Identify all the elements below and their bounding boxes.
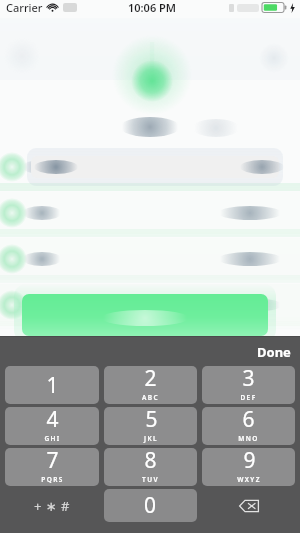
staticText: 6 xyxy=(242,407,255,434)
staticText: TUV xyxy=(142,475,159,484)
staticText: JKL xyxy=(144,434,158,443)
button[interactable]: 1 xyxy=(5,366,99,404)
staticText: 5 xyxy=(145,407,158,434)
staticText: 0 xyxy=(144,491,157,520)
button[interactable]: 9 xyxy=(202,448,295,486)
staticText: + ∗ # xyxy=(34,497,70,515)
button[interactable]: 2 xyxy=(104,366,197,404)
button[interactable]: 6 xyxy=(202,407,295,445)
button[interactable]: 3 xyxy=(202,366,295,404)
staticText: ABC xyxy=(142,393,159,402)
staticText: Done xyxy=(257,343,291,361)
staticText: 9 xyxy=(243,448,256,475)
button[interactable]: 8 xyxy=(104,448,197,486)
button[interactable]: Delete xyxy=(202,489,295,522)
button[interactable]: + ∗ # xyxy=(5,489,99,522)
staticText: 4 xyxy=(46,407,59,434)
staticText: WXYZ xyxy=(237,475,261,484)
button[interactable]: 7 xyxy=(5,448,99,486)
button[interactable]: 0 xyxy=(104,489,197,522)
staticText: MNO xyxy=(238,434,259,443)
staticText: 3 xyxy=(242,366,255,393)
staticText: 2 xyxy=(144,366,157,393)
staticText: PQRS xyxy=(41,475,64,484)
staticText: DEF xyxy=(240,393,257,402)
staticText: 10:06 PM xyxy=(128,0,177,15)
staticText: 1 xyxy=(46,371,59,400)
staticText: 8 xyxy=(144,448,157,475)
staticText: 7 xyxy=(46,448,59,475)
button[interactable]: 4 xyxy=(5,407,99,445)
staticText: GHI xyxy=(44,434,61,443)
staticText: Carrier xyxy=(6,0,43,15)
button[interactable]: 5 xyxy=(104,407,197,445)
button[interactable]: Done xyxy=(248,339,300,365)
